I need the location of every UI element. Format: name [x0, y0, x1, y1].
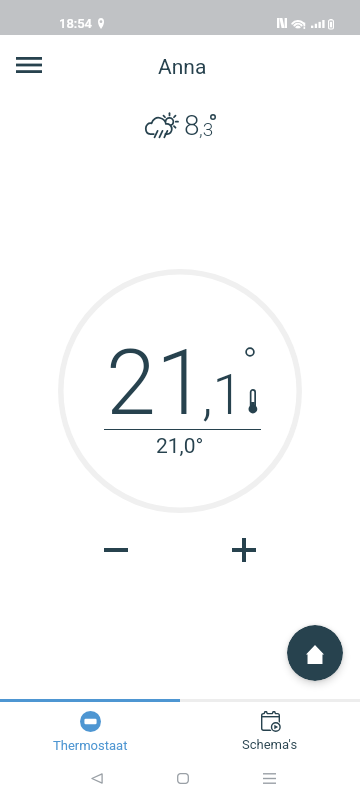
staticText: 8: [184, 109, 200, 142]
staticText: ,3: [199, 118, 214, 140]
button[interactable]: Back: [75, 756, 119, 800]
button[interactable]: Schema's: [180, 702, 360, 760]
staticText: Schema's: [242, 737, 298, 752]
staticText: Anna: [158, 55, 207, 80]
staticText: ,1: [202, 363, 244, 427]
staticText: 21: [106, 331, 206, 436]
button[interactable]: Thermostaat: [0, 702, 180, 760]
button[interactable]: Increase temperature: [216, 522, 272, 578]
staticText: Thermostaat: [53, 738, 128, 753]
staticText: 21,0°: [156, 434, 204, 459]
button[interactable]: Home: [161, 756, 205, 800]
button[interactable]: Home: [287, 625, 343, 681]
staticText: 18:54: [59, 16, 92, 31]
button[interactable]: Recent apps: [247, 756, 291, 800]
button[interactable]: Decrease temperature: [88, 522, 144, 578]
button[interactable]: Menu: [7, 43, 51, 87]
